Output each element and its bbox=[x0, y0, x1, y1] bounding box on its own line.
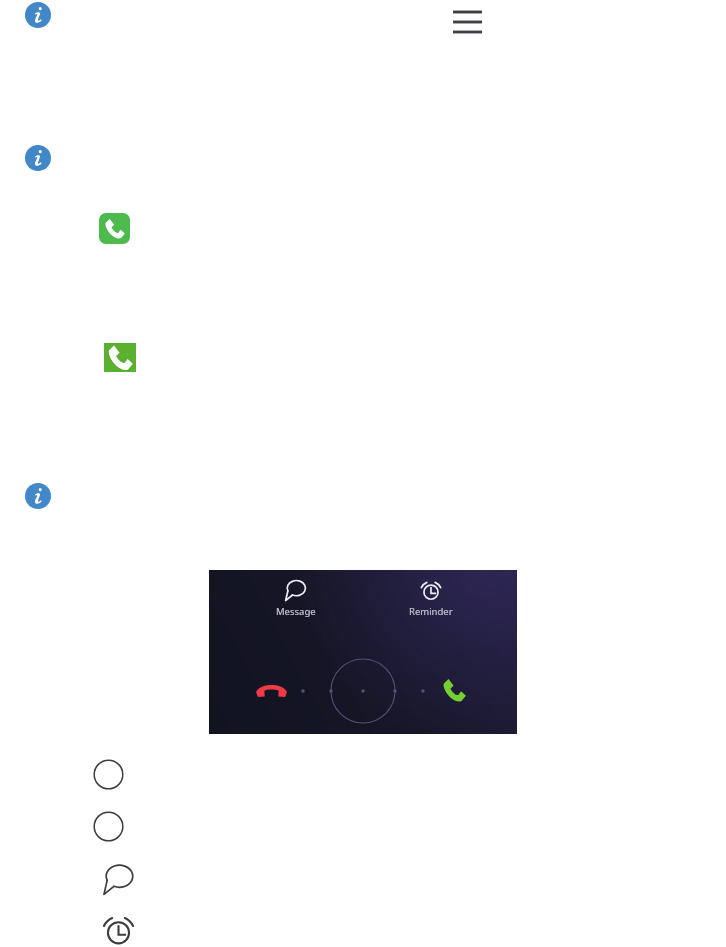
staticText: Message bbox=[276, 605, 316, 618]
button[interactable]: Accept call bbox=[442, 678, 466, 702]
button[interactable]: Reject call bbox=[93, 811, 124, 842]
button[interactable]: Message bbox=[103, 863, 135, 895]
button[interactable]: Menu bbox=[448, 4, 487, 40]
button[interactable]: Decline call bbox=[256, 685, 287, 697]
button[interactable]: Reminder bbox=[397, 579, 465, 627]
button[interactable]: Answer call bbox=[93, 759, 124, 790]
button[interactable]: Message bbox=[262, 579, 330, 627]
staticText: Reminder bbox=[409, 605, 453, 618]
button[interactable]: Phone app bbox=[99, 213, 130, 244]
button[interactable]: Phone app bbox=[104, 343, 136, 372]
button[interactable]: Information bbox=[25, 483, 51, 509]
button[interactable]: Reminder bbox=[102, 913, 135, 946]
button[interactable]: Information bbox=[25, 145, 51, 171]
button[interactable]: Information bbox=[25, 2, 51, 28]
